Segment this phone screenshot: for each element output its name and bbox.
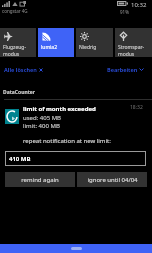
staticText: Niedrig — [79, 44, 97, 51]
staticText: ignore until 04/04 — [87, 176, 138, 184]
staticText: Alle löschen — [4, 66, 37, 73]
button[interactable]: 410 MB — [5, 151, 146, 166]
staticText: Bearbeiten — [107, 66, 138, 73]
button[interactable]: ignore until 04/04 — [77, 172, 147, 187]
staticText: repeat notification at new limit: — [23, 137, 111, 145]
staticText: 10:32 — [131, 1, 147, 9]
staticText: used: 405 MB — [23, 114, 62, 122]
staticText: 410 MB — [9, 155, 31, 163]
staticText: 18:32 — [130, 104, 143, 111]
staticText: limit of month exceeded — [23, 105, 96, 113]
staticText: Stromspar- modus — [118, 44, 145, 57]
button[interactable]: Airplane mode — [0, 28, 36, 57]
button[interactable]: limit of month exceeded — [0, 99, 152, 189]
button[interactable]: Home — [71, 247, 82, 250]
staticText: congstar 4G — [2, 8, 28, 14]
button[interactable]: Bearbeiten — [106, 64, 145, 75]
staticText: limit: 400 MB — [23, 122, 60, 130]
staticText: DataCounter — [3, 89, 36, 96]
staticText: 91% — [120, 9, 129, 15]
button[interactable]: Alle löschen — [3, 64, 44, 75]
staticText: remind again — [21, 176, 59, 184]
button[interactable]: Battery saver — [115, 28, 152, 57]
staticText: Flugzeug- modus — [3, 44, 26, 57]
button[interactable]: remind again — [5, 172, 75, 187]
button[interactable]: Wi-Fi — [38, 28, 74, 57]
button[interactable]: Brightness — [76, 28, 113, 57]
staticText: lumia2 — [41, 44, 58, 51]
